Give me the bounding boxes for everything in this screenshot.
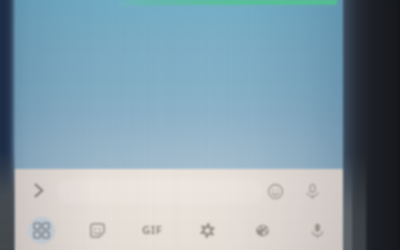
button[interactable]: Emoji [262,178,288,204]
button[interactable]: Themes [235,210,290,250]
staticText: GIF [142,222,163,238]
button[interactable]: GIF [125,210,180,250]
button[interactable]: Stickers [69,210,125,250]
button[interactable]: Settings [180,210,235,250]
button[interactable]: Voice typing [290,210,345,250]
button[interactable]: Voice input [299,178,325,204]
button[interactable]: Search [57,180,263,203]
button[interactable]: Apps [13,210,69,250]
button[interactable]: Expand toolbar [24,176,52,204]
